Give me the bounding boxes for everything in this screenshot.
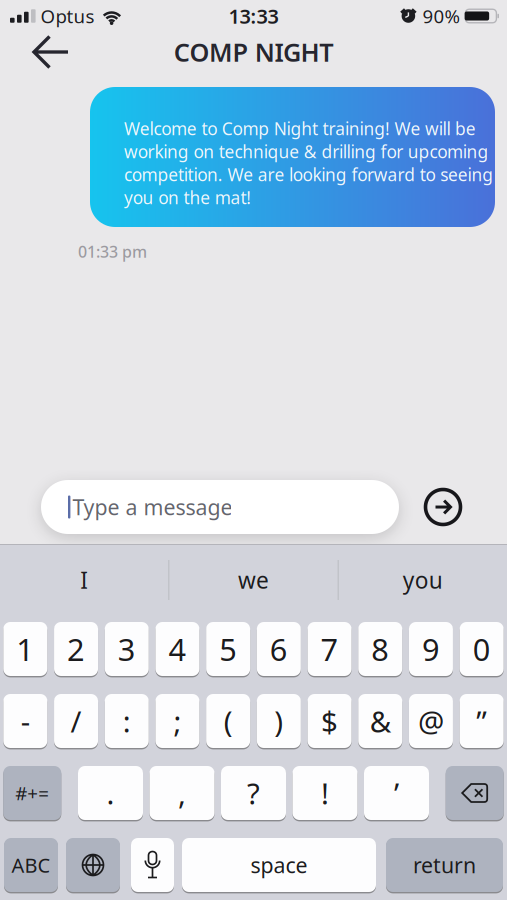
staticText: 5 <box>219 629 237 669</box>
staticText: 90% <box>422 4 460 28</box>
staticText: ( <box>224 701 233 740</box>
button[interactable]: 7 <box>307 622 351 676</box>
button[interactable]: ’ <box>364 766 429 820</box>
staticText: 7 <box>320 629 338 669</box>
staticText: ? <box>247 773 260 812</box>
button[interactable]: 6 <box>257 622 301 676</box>
staticText: , <box>178 773 186 812</box>
staticText: - <box>21 701 30 740</box>
button[interactable]: 8 <box>358 622 402 676</box>
staticText: 6 <box>270 629 288 669</box>
staticText: : <box>123 701 131 740</box>
staticText: ) <box>274 701 283 740</box>
button[interactable]: ( <box>206 694 250 748</box>
staticText: 8 <box>371 629 389 669</box>
staticText: 1 <box>16 629 34 669</box>
staticText: we <box>238 565 269 595</box>
button[interactable]: ; <box>155 694 199 748</box>
staticText: $ <box>321 701 338 740</box>
button[interactable]: ) <box>257 694 301 748</box>
staticText: Optus <box>41 4 95 28</box>
button[interactable]: 2 <box>54 622 98 676</box>
button[interactable]: return <box>386 838 503 892</box>
staticText: ! <box>321 773 329 812</box>
staticText: ’ <box>394 773 399 812</box>
staticText: @ <box>418 701 444 740</box>
staticText: & <box>370 701 391 740</box>
button[interactable]: : <box>105 694 149 748</box>
button[interactable]: Delete <box>446 766 504 820</box>
button[interactable]: ABC <box>4 838 58 892</box>
staticText: Welcome to Comp Night training! We will … <box>124 117 493 209</box>
button[interactable]: you <box>339 565 507 595</box>
button[interactable]: - <box>3 694 47 748</box>
button[interactable]: 4 <box>155 622 199 676</box>
button[interactable]: Send <box>425 489 460 524</box>
staticText: Type a message <box>72 493 232 521</box>
button[interactable]: we <box>169 565 338 595</box>
staticText: return <box>413 851 476 879</box>
staticText: 13:33 <box>228 3 278 29</box>
button[interactable]: ” <box>460 694 504 748</box>
staticText: 3 <box>118 629 136 669</box>
button[interactable]: & <box>358 694 402 748</box>
staticText: ; <box>173 701 181 740</box>
button[interactable]: Back <box>0 35 78 69</box>
button[interactable]: 9 <box>409 622 453 676</box>
button[interactable]: Type a message <box>41 480 399 534</box>
button[interactable]: I <box>0 565 168 595</box>
button[interactable]: 1 <box>3 622 47 676</box>
button[interactable]: ! <box>292 766 357 820</box>
button[interactable]: 3 <box>105 622 149 676</box>
button[interactable]: Next keyboard <box>66 838 120 892</box>
button[interactable]: $ <box>307 694 351 748</box>
button[interactable]: / <box>54 694 98 748</box>
staticText: / <box>70 701 81 740</box>
staticText: 4 <box>168 629 186 669</box>
button[interactable]: @ <box>409 694 453 748</box>
staticText: 9 <box>422 629 440 669</box>
staticText: I <box>80 565 88 595</box>
button[interactable]: . <box>78 766 143 820</box>
button[interactable]: ? <box>221 766 286 820</box>
staticText: ABC <box>11 852 50 878</box>
button[interactable]: #+= <box>3 766 61 820</box>
staticText: space <box>250 851 307 879</box>
staticText: COMP NIGHT <box>174 35 333 69</box>
button[interactable]: space <box>182 838 376 892</box>
staticText: ” <box>476 701 487 740</box>
staticText: 01:33 pm <box>78 241 147 262</box>
staticText: . <box>106 773 114 812</box>
staticText: 0 <box>473 629 491 669</box>
staticText: #+= <box>15 781 49 805</box>
staticText: 2 <box>67 629 85 669</box>
staticText: you <box>403 565 443 595</box>
button[interactable]: 0 <box>460 622 504 676</box>
button[interactable]: Dictate <box>131 838 174 892</box>
button[interactable]: 5 <box>206 622 250 676</box>
button[interactable]: , <box>149 766 214 820</box>
